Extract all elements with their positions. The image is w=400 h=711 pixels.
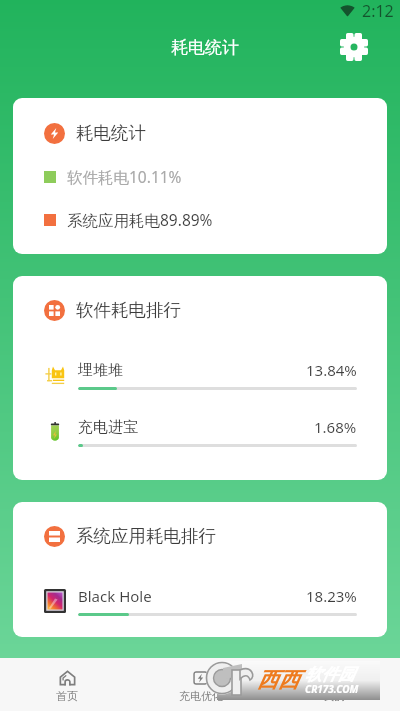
staticText: 耗电统计 bbox=[171, 37, 239, 58]
staticText: 充电进宝 bbox=[78, 418, 138, 437]
button[interactable]: 首页 bbox=[0, 658, 134, 711]
staticText: 软件耗电10.11% bbox=[67, 166, 182, 187]
staticText: 系统应用耗电89.89% bbox=[67, 209, 213, 230]
staticText: 首页 bbox=[56, 689, 78, 703]
staticText: 西西 bbox=[257, 667, 299, 693]
staticText: 耗电统计 bbox=[76, 122, 146, 144]
button[interactable]: 我的 bbox=[267, 658, 400, 711]
staticText: 软件耗电排行 bbox=[76, 299, 181, 321]
staticText: Black Hole bbox=[78, 586, 152, 606]
staticText: 18.23% bbox=[306, 586, 357, 606]
button[interactable]: 埋堆堆 bbox=[44, 360, 357, 390]
button[interactable]: Settings bbox=[334, 27, 374, 67]
staticText: 软件园 bbox=[305, 664, 355, 685]
staticText: 我的 bbox=[323, 689, 345, 703]
staticText: 13.84% bbox=[306, 360, 357, 380]
staticText: 埋堆堆 bbox=[78, 361, 123, 380]
staticText: 2:12 bbox=[362, 0, 394, 20]
button[interactable]: Black Hole bbox=[44, 586, 357, 616]
staticText: CR173.COM bbox=[305, 682, 359, 696]
button[interactable]: 充电进宝 bbox=[44, 417, 357, 447]
staticText: 充电优化 bbox=[179, 689, 223, 703]
staticText: 系统应用耗电排行 bbox=[76, 525, 216, 547]
button[interactable]: 充电优化 bbox=[134, 658, 267, 711]
staticText: 1.68% bbox=[314, 417, 357, 437]
